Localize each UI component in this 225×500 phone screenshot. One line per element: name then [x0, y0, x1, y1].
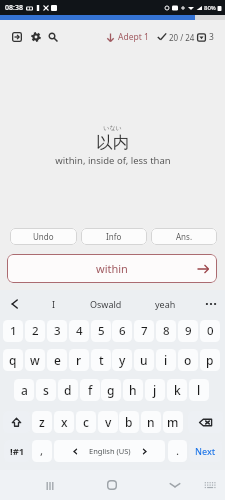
staticText: yeah: [155, 298, 176, 310]
staticText: 5: [98, 323, 105, 339]
staticText: u: [140, 352, 148, 368]
button[interactable]: 2: [25, 320, 45, 342]
button[interactable]: v: [98, 411, 118, 433]
button[interactable]: Back: [163, 473, 186, 496]
button[interactable]: Exit: [8, 28, 25, 45]
staticText: 4: [76, 323, 83, 339]
staticText: c: [83, 414, 89, 430]
staticText: e: [54, 352, 61, 368]
staticText: r: [76, 352, 82, 368]
staticText: b: [125, 414, 133, 430]
staticText: a: [21, 382, 28, 398]
button[interactable]: s: [36, 379, 56, 401]
button[interactable]: f: [80, 379, 100, 401]
button[interactable]: o: [178, 349, 198, 371]
button[interactable]: i: [156, 349, 176, 371]
button[interactable]: u: [134, 349, 154, 371]
button[interactable]: 9: [178, 320, 198, 342]
button[interactable]: Ans.: [151, 228, 217, 245]
button[interactable]: p: [200, 349, 220, 371]
staticText: 1: [10, 323, 17, 339]
button[interactable]: n: [141, 411, 161, 433]
staticText: q: [9, 352, 17, 368]
staticText: Ans.: [176, 231, 193, 242]
button[interactable]: 0: [200, 320, 220, 342]
staticText: 3: [209, 31, 214, 43]
button[interactable]: g: [101, 379, 121, 401]
button[interactable]: within: [7, 254, 217, 283]
button[interactable]: w: [25, 349, 45, 371]
button[interactable]: z: [32, 411, 52, 433]
button[interactable]: Undo: [10, 228, 77, 245]
button[interactable]: ,: [32, 440, 52, 462]
staticText: 0: [207, 323, 214, 339]
button[interactable]: Home: [100, 473, 123, 496]
button[interactable]: 4: [69, 320, 89, 342]
button[interactable]: b: [119, 411, 139, 433]
staticText: w: [30, 352, 40, 368]
button[interactable]: j: [145, 379, 165, 401]
button[interactable]: yeah: [155, 298, 176, 310]
button[interactable]: Info: [81, 228, 147, 245]
staticText: Info: [106, 231, 122, 242]
button[interactable]: x: [54, 411, 74, 433]
button[interactable]: .: [168, 440, 187, 462]
button[interactable]: 3: [197, 27, 214, 47]
button[interactable]: y: [112, 349, 132, 371]
button[interactable]: Oswald: [90, 298, 122, 310]
button[interactable]: 5: [91, 320, 111, 342]
button[interactable]: Recents: [38, 474, 61, 497]
staticText: h: [129, 382, 137, 398]
button[interactable]: Backspace: [188, 411, 223, 433]
staticText: d: [64, 382, 72, 398]
staticText: p: [206, 352, 214, 368]
button[interactable]: Space, English (US): [54, 440, 165, 462]
button[interactable]: l: [189, 379, 209, 401]
button[interactable]: 8: [156, 320, 176, 342]
staticText: x: [61, 414, 68, 430]
button[interactable]: m: [163, 411, 183, 433]
button[interactable]: Search: [44, 28, 61, 45]
button[interactable]: 7: [134, 320, 154, 342]
button[interactable]: d: [58, 379, 78, 401]
staticText: i: [164, 352, 168, 368]
button[interactable]: k: [167, 379, 187, 401]
staticText: ,: [40, 443, 44, 459]
button[interactable]: Next: [189, 440, 222, 462]
button[interactable]: c: [76, 411, 96, 433]
button[interactable]: r: [69, 349, 89, 371]
button[interactable]: 1: [3, 320, 23, 342]
button[interactable]: t: [91, 349, 111, 371]
staticText: 08:38: [5, 3, 23, 13]
staticText: 8: [163, 323, 170, 339]
button[interactable]: More options: [201, 294, 221, 314]
button[interactable]: I: [52, 298, 56, 310]
staticText: Oswald: [90, 298, 122, 310]
staticText: s: [43, 382, 49, 398]
staticText: !#1: [10, 445, 25, 458]
staticText: o: [184, 352, 192, 368]
button[interactable]: 20 / 24: [157, 27, 195, 47]
button[interactable]: !#1: [4, 440, 30, 462]
button[interactable]: Settings: [27, 28, 44, 45]
staticText: m: [167, 414, 179, 430]
staticText: 3: [54, 323, 61, 339]
button[interactable]: Previous suggestions: [5, 294, 25, 314]
staticText: j: [153, 382, 157, 398]
staticText: within: [96, 261, 128, 276]
staticText: いない: [103, 124, 122, 132]
button[interactable]: a: [14, 379, 34, 401]
button[interactable]: 6: [112, 320, 132, 342]
button[interactable]: Shift: [3, 411, 30, 433]
button[interactable]: Adept 1: [106, 27, 149, 47]
button[interactable]: e: [47, 349, 67, 371]
button[interactable]: Hide keyboard: [199, 474, 221, 496]
button[interactable]: 3: [47, 320, 67, 342]
button[interactable]: h: [123, 379, 143, 401]
staticText: Undo: [33, 231, 54, 242]
staticText: 9: [185, 323, 192, 339]
button[interactable]: q: [3, 349, 23, 371]
staticText: within, inside of, less than: [55, 154, 171, 167]
staticText: t: [99, 352, 104, 368]
staticText: .: [176, 443, 180, 459]
